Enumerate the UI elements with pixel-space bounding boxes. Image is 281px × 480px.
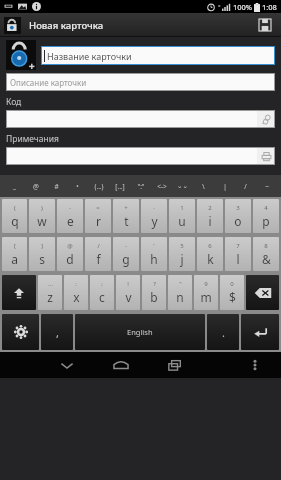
staticText: g bbox=[122, 251, 130, 267]
button[interactable]: Choose icon bbox=[6, 40, 36, 70]
button[interactable]: ... bbox=[38, 275, 62, 310]
button[interactable]: \ bbox=[193, 175, 214, 197]
button[interactable]: Save bbox=[252, 13, 278, 37]
button[interactable]: Settings bbox=[2, 314, 39, 350]
button[interactable]: 5 bbox=[169, 237, 195, 271]
staticText: u bbox=[178, 213, 186, 229]
staticText: w bbox=[37, 213, 47, 229]
button[interactable]: Название карточки bbox=[41, 46, 275, 65]
button[interactable]: Generate code bbox=[257, 110, 275, 128]
staticText: s bbox=[39, 251, 45, 267]
button[interactable]: @ bbox=[57, 237, 83, 271]
button[interactable]: Enter bbox=[241, 314, 279, 350]
button[interactable]: Home bbox=[101, 352, 141, 378]
staticText: ⌄⌄ bbox=[177, 182, 188, 190]
button[interactable]: . bbox=[207, 314, 239, 350]
staticText: h bbox=[150, 251, 158, 267]
staticText: o bbox=[234, 213, 242, 229]
staticText: y bbox=[151, 213, 158, 229]
button[interactable]: 7 bbox=[225, 237, 251, 271]
button[interactable]: English bbox=[75, 314, 205, 350]
button[interactable]: " bbox=[168, 275, 192, 310]
button[interactable]: ] bbox=[29, 237, 55, 271]
button[interactable] bbox=[6, 110, 257, 128]
staticText: <-> bbox=[157, 182, 167, 191]
button[interactable]: = bbox=[85, 199, 111, 233]
button[interactable]: 9 bbox=[194, 275, 218, 310]
staticText: 8 bbox=[264, 242, 268, 250]
button[interactable]: 8 bbox=[253, 237, 279, 271]
staticText: x bbox=[73, 289, 80, 305]
button[interactable] bbox=[6, 147, 257, 165]
button[interactable]: Backspace bbox=[246, 275, 279, 310]
button[interactable]: ~ bbox=[256, 175, 277, 197]
button[interactable]: 6 bbox=[197, 237, 223, 271]
button[interactable]: ? bbox=[142, 275, 166, 310]
button[interactable]: + bbox=[113, 199, 139, 233]
button[interactable]: [ bbox=[2, 237, 27, 271]
staticText: 4 bbox=[264, 204, 268, 212]
button[interactable]: : bbox=[64, 275, 88, 310]
button[interactable]: <-> bbox=[151, 175, 172, 197]
staticText: i bbox=[208, 213, 212, 229]
staticText: ... bbox=[48, 280, 53, 288]
button[interactable]: [...] bbox=[109, 175, 130, 197]
button[interactable]: ":" bbox=[130, 175, 151, 197]
button[interactable]: , bbox=[41, 314, 73, 350]
button[interactable]: 0 bbox=[220, 275, 244, 310]
staticText: / bbox=[97, 242, 100, 250]
button[interactable]: ⌄⌄ bbox=[172, 175, 193, 197]
button[interactable]: Up bbox=[3, 16, 22, 35]
staticText: z bbox=[47, 289, 53, 305]
button[interactable]: Attach bbox=[257, 147, 275, 165]
staticText: : bbox=[75, 280, 77, 288]
staticText: m bbox=[200, 289, 212, 305]
staticText: English bbox=[127, 327, 153, 337]
button[interactable]: 2 bbox=[197, 199, 223, 233]
button[interactable]: 4 bbox=[253, 199, 279, 233]
button[interactable]: ; bbox=[90, 275, 114, 310]
staticText: Код bbox=[6, 96, 22, 108]
button[interactable]: - bbox=[57, 199, 83, 233]
staticText: • bbox=[76, 182, 79, 191]
button[interactable]: | bbox=[214, 175, 235, 197]
staticText: 7 bbox=[236, 242, 240, 250]
button[interactable]: ) bbox=[29, 199, 55, 233]
button[interactable]: ' bbox=[141, 237, 167, 271]
button[interactable]: ( bbox=[2, 199, 27, 233]
button[interactable]: Hide keyboard bbox=[47, 352, 87, 378]
button[interactable]: 3 bbox=[225, 199, 251, 233]
staticText: = bbox=[96, 204, 100, 212]
staticText: , bbox=[56, 325, 59, 340]
staticText: - bbox=[125, 242, 127, 250]
staticText: Примечания bbox=[6, 133, 59, 145]
button[interactable]: · bbox=[141, 199, 167, 233]
button[interactable]: More options bbox=[239, 352, 271, 378]
button[interactable]: Recents bbox=[155, 352, 195, 378]
button[interactable]: (...) bbox=[88, 175, 109, 197]
button[interactable]: / bbox=[85, 237, 111, 271]
staticText: - bbox=[69, 204, 71, 212]
button[interactable]: Описание карточки bbox=[6, 73, 275, 91]
staticText: [...] bbox=[115, 182, 125, 191]
button[interactable]: / bbox=[235, 175, 256, 197]
staticText: @ bbox=[33, 182, 39, 191]
button[interactable]: - bbox=[113, 237, 139, 271]
staticText: 9 bbox=[204, 280, 208, 288]
button[interactable]: @ bbox=[25, 175, 46, 197]
button[interactable]: ! bbox=[116, 275, 140, 310]
staticText: ' bbox=[153, 242, 155, 250]
staticText: r bbox=[96, 213, 101, 229]
staticText: / bbox=[244, 182, 247, 191]
button[interactable]: • bbox=[67, 175, 88, 197]
staticText: ":" bbox=[137, 182, 145, 191]
staticText: d bbox=[66, 251, 74, 267]
staticText: n bbox=[176, 289, 184, 305]
staticText: Название карточки bbox=[47, 50, 132, 62]
staticText: 6 bbox=[208, 242, 212, 250]
staticText: 0 bbox=[230, 280, 234, 288]
button[interactable]: 1 bbox=[169, 199, 195, 233]
button[interactable]: _ bbox=[4, 175, 25, 197]
button[interactable]: # bbox=[46, 175, 67, 197]
button[interactable]: Shift bbox=[2, 275, 36, 310]
